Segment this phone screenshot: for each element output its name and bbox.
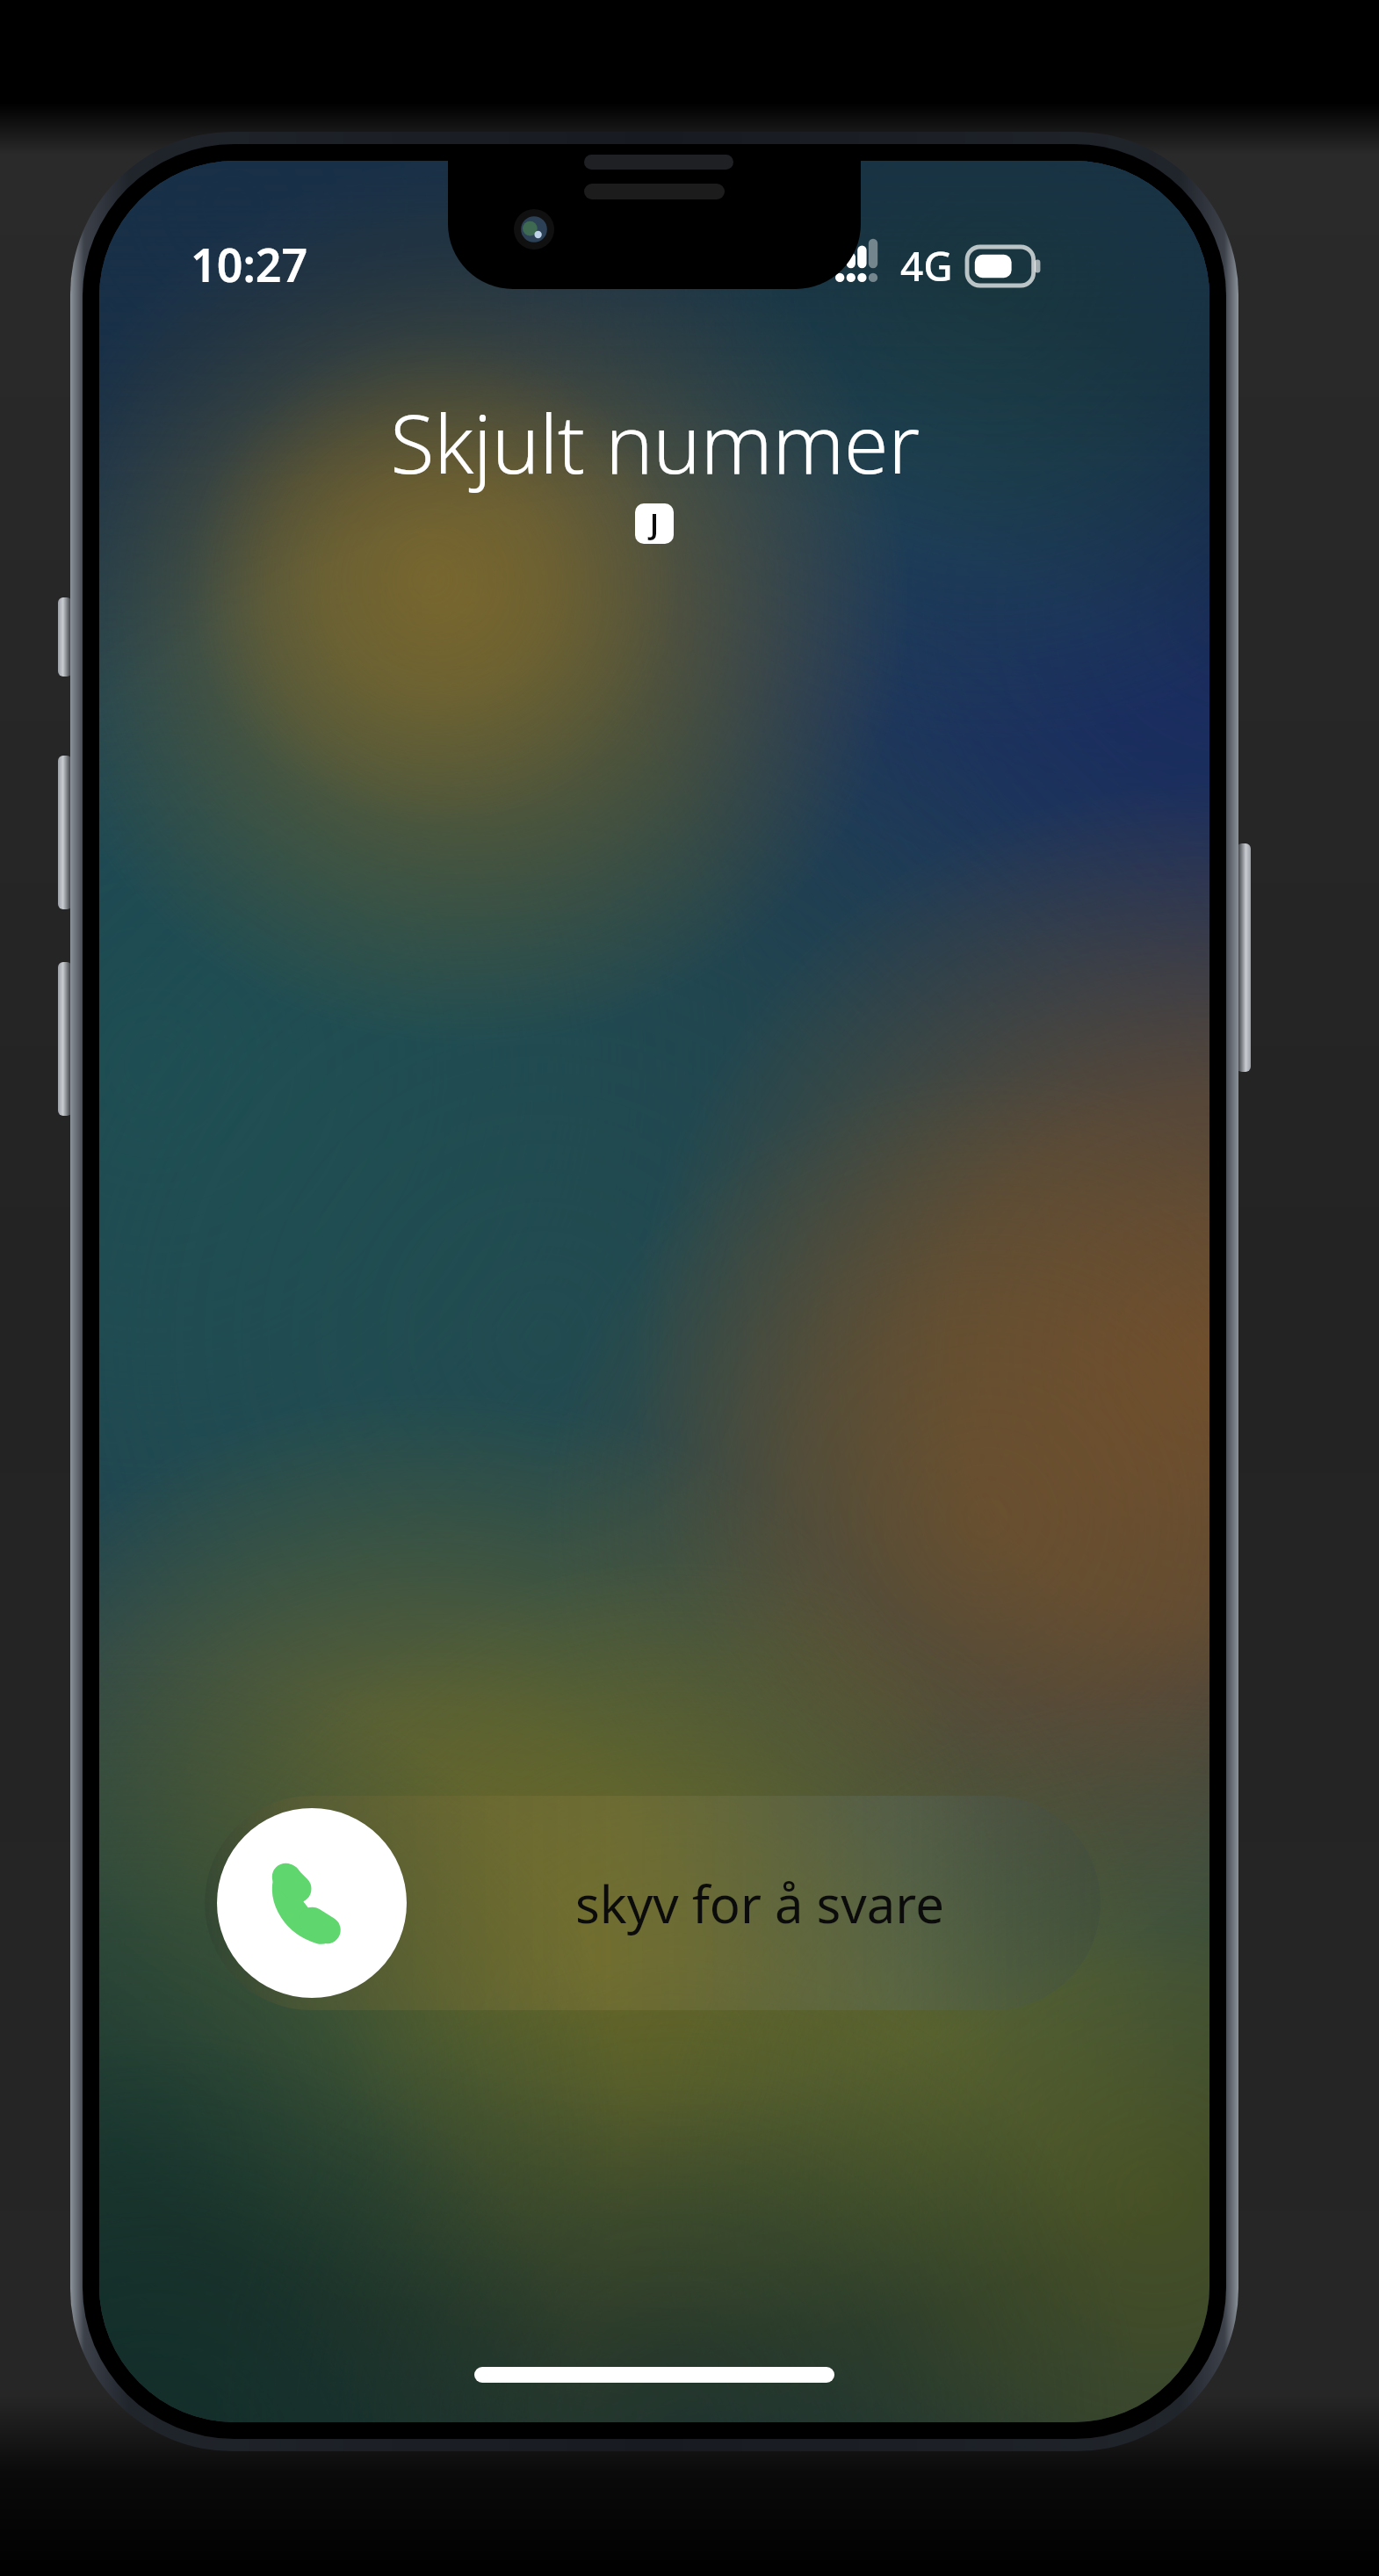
staticText: skyv for å svare	[575, 1869, 944, 1938]
staticText: J	[650, 504, 659, 543]
staticText: 10:27	[191, 233, 308, 295]
button[interactable]: Svar	[217, 1808, 407, 1998]
button[interactable]: skyv for å svare	[205, 1796, 1101, 2010]
staticText: Skjult nummer	[390, 387, 920, 497]
staticText: 4G	[900, 238, 953, 293]
